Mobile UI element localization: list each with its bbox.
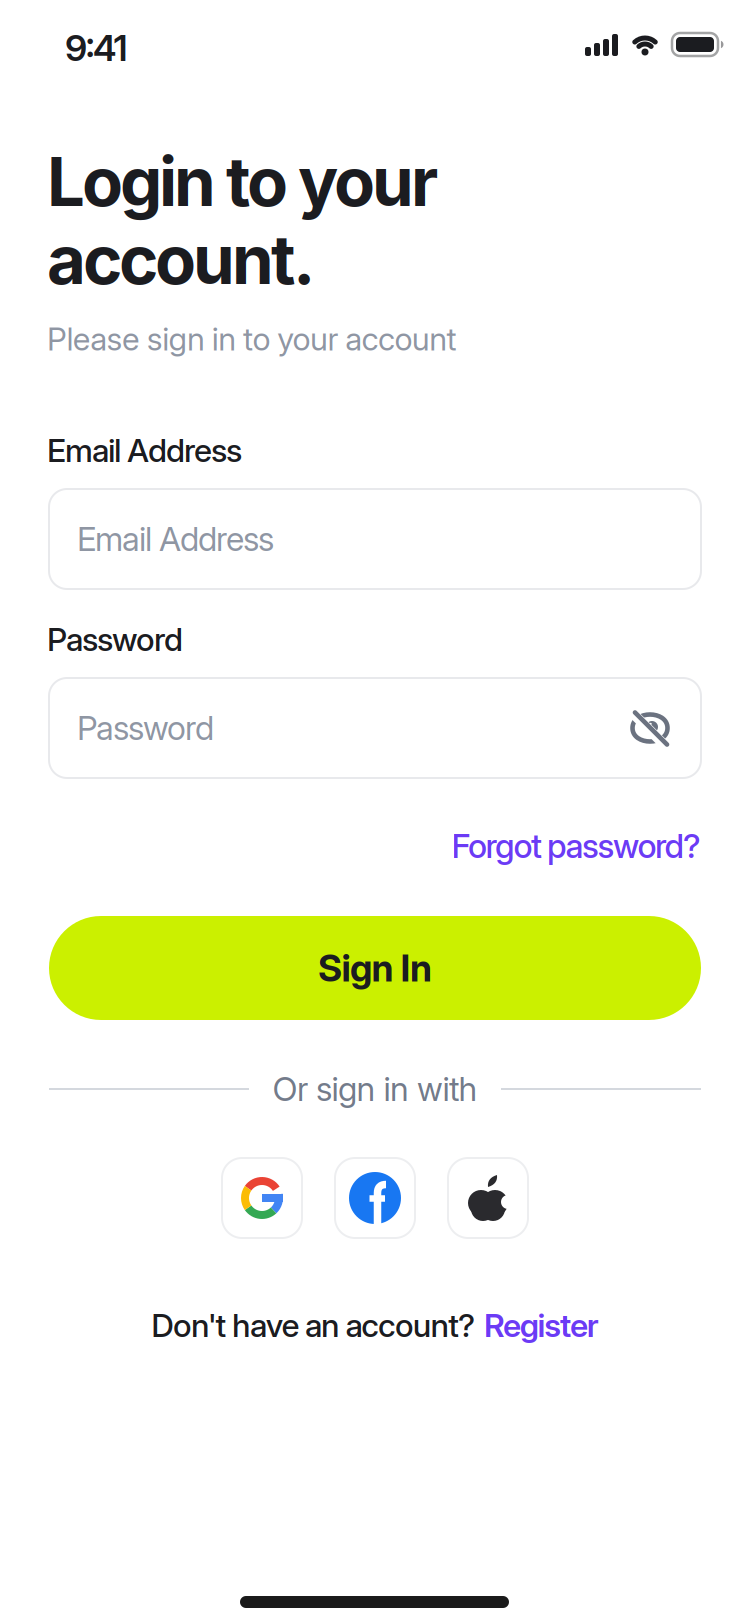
staticText: Don't have an account?: [151, 1306, 475, 1345]
staticText: Sign In: [318, 946, 432, 990]
staticText: Email Address: [47, 431, 242, 470]
staticText: Password: [77, 708, 214, 748]
staticText: Please sign in to your account: [47, 320, 457, 358]
staticText: Or sign in with: [272, 1069, 477, 1109]
staticText: Forgot password?: [451, 826, 701, 866]
staticText: Password: [47, 620, 183, 659]
staticText: Login to your account.: [47, 141, 438, 300]
staticText: Register: [484, 1306, 599, 1345]
staticText: Email Address: [77, 519, 274, 559]
staticText: 9:41: [65, 26, 127, 70]
